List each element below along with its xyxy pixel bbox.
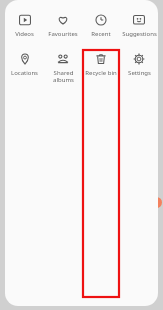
staticText: Recent <box>91 30 111 38</box>
staticText: Locations <box>11 69 38 77</box>
button[interactable]: Shared albums <box>44 50 82 89</box>
staticText: Recycle bin <box>85 69 117 77</box>
staticText: Videos <box>15 30 34 38</box>
button[interactable]: Floating action <box>151 197 162 208</box>
button[interactable]: Search <box>115 88 137 110</box>
button[interactable]: Settings <box>120 50 158 82</box>
staticText: Pictures <box>53 30 110 50</box>
staticText: Suggestions <box>122 30 157 38</box>
button[interactable]: Recent <box>82 11 120 43</box>
button[interactable]: Locations <box>5 50 44 82</box>
button[interactable]: Favourites <box>44 11 82 43</box>
button[interactable]: Recycle bin <box>83 50 119 297</box>
button[interactable]: Videos <box>5 11 44 43</box>
button[interactable]: Suggestions <box>120 11 158 43</box>
staticText: Shared albums <box>53 69 74 84</box>
staticText: Settings <box>128 69 151 77</box>
staticText: Favourites <box>48 30 78 38</box>
